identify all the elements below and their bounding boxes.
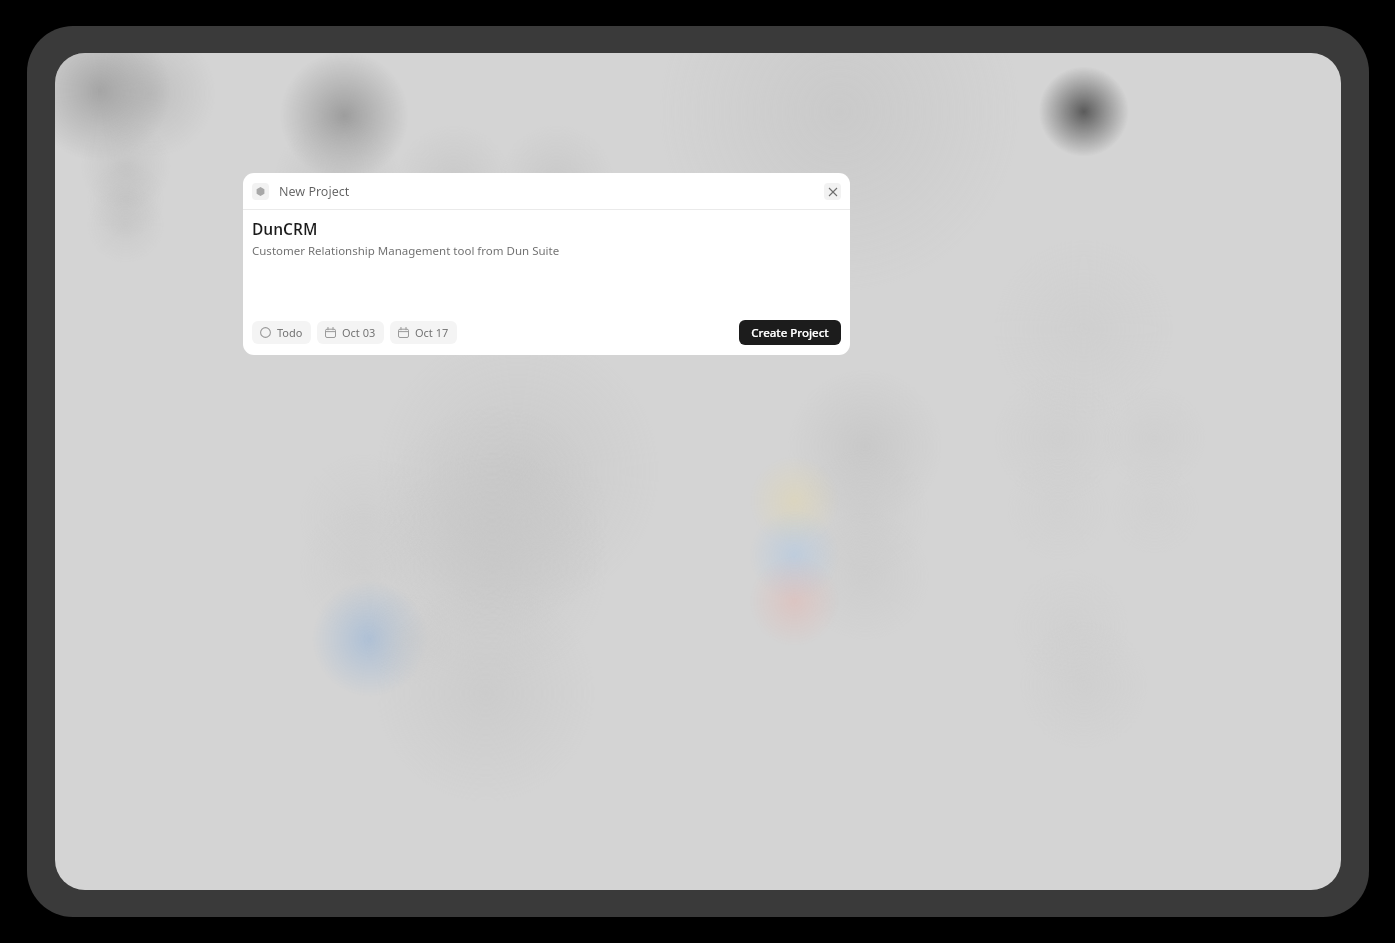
button[interactable]: Create Project	[739, 320, 841, 345]
staticText: New Project	[279, 183, 350, 200]
staticText: Create Project	[751, 325, 829, 341]
staticText: Customer Relationship Management tool fr…	[252, 243, 560, 259]
button[interactable]: Oct 17	[390, 321, 457, 344]
button[interactable]: Todo	[252, 321, 311, 344]
button[interactable]: Oct 03	[317, 321, 384, 344]
button[interactable]: Close	[824, 183, 841, 200]
staticText: Oct 03	[342, 325, 376, 340]
staticText: DunCRM	[252, 218, 318, 239]
staticText: Oct 17	[415, 325, 449, 340]
staticText: Todo	[277, 325, 303, 340]
